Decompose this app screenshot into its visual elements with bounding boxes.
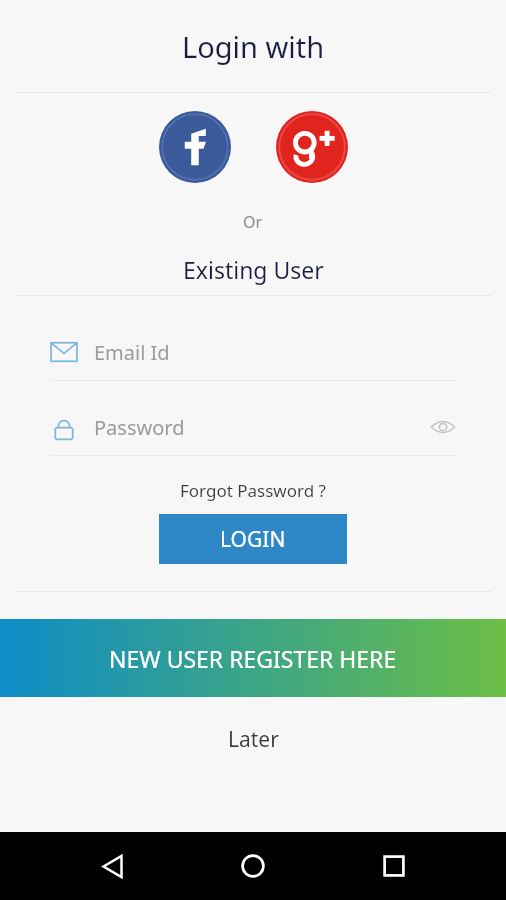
staticText: Password [94, 414, 185, 441]
button[interactable]: Sign in with Facebook [159, 111, 231, 183]
other: Show password [430, 414, 456, 440]
staticText: NEW USER REGISTER HERE [109, 643, 397, 674]
button[interactable]: NEW USER REGISTER HERE [0, 619, 506, 697]
button[interactable]: LOGIN [159, 514, 347, 564]
staticText: Email Id [94, 339, 170, 366]
staticText: Forgot Password ? [180, 479, 326, 502]
staticText: Login with [182, 27, 325, 66]
staticText: LOGIN [220, 525, 286, 554]
button[interactable]: Password [50, 407, 456, 456]
staticText: Existing User [183, 254, 324, 285]
staticText: Or [243, 211, 263, 233]
button[interactable]: Later [0, 697, 506, 832]
button[interactable]: Home [225, 838, 281, 894]
staticText: Later [228, 725, 279, 754]
button[interactable]: Back [85, 838, 141, 894]
button[interactable]: Forgot Password ? [0, 474, 506, 506]
button[interactable]: Email Id [50, 332, 456, 381]
button[interactable]: Sign in with Google Plus [276, 111, 348, 183]
button[interactable]: Recent apps [366, 838, 422, 894]
